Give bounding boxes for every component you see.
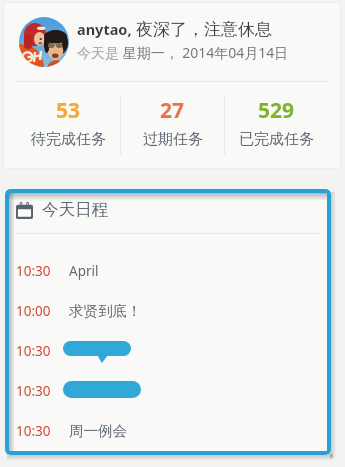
staticText: 10:30 [16,262,51,280]
button[interactable]: 10:00 [5,291,331,331]
staticText: 过期任务 [143,130,203,149]
staticText: 已完成任务 [239,130,314,149]
button[interactable]: 10:30 [5,331,331,371]
staticText: 27 [160,96,185,125]
button[interactable]: 10:30 [5,371,331,411]
staticText: 10:00 [16,302,51,320]
button[interactable]: 10:30 [5,411,331,451]
staticText: 待完成任务 [31,130,106,149]
staticText: 求贤到底！ [69,302,142,320]
staticText: 529 [258,96,295,125]
staticText: 周一例会 [69,422,127,440]
button[interactable]: 今天日程 [5,189,331,233]
staticText: anytao, 夜深了，注意休息 [77,17,272,40]
button[interactable]: 529 [225,82,328,169]
staticText: 53 [56,96,81,125]
button[interactable]: 10:30 [5,251,331,291]
staticText: 今天日程 [42,199,108,220]
staticText: 10:30 [16,382,51,400]
button[interactable]: anytao, 夜深了，注意休息 [3,2,341,81]
staticText: 今天是 星期一， 2014年04月14日 [77,43,289,62]
staticText: 10:30 [16,422,51,440]
button[interactable]: 53 [16,82,120,169]
staticText: April [69,262,99,280]
button[interactable]: 27 [121,82,224,169]
staticText: 10:30 [16,342,51,360]
